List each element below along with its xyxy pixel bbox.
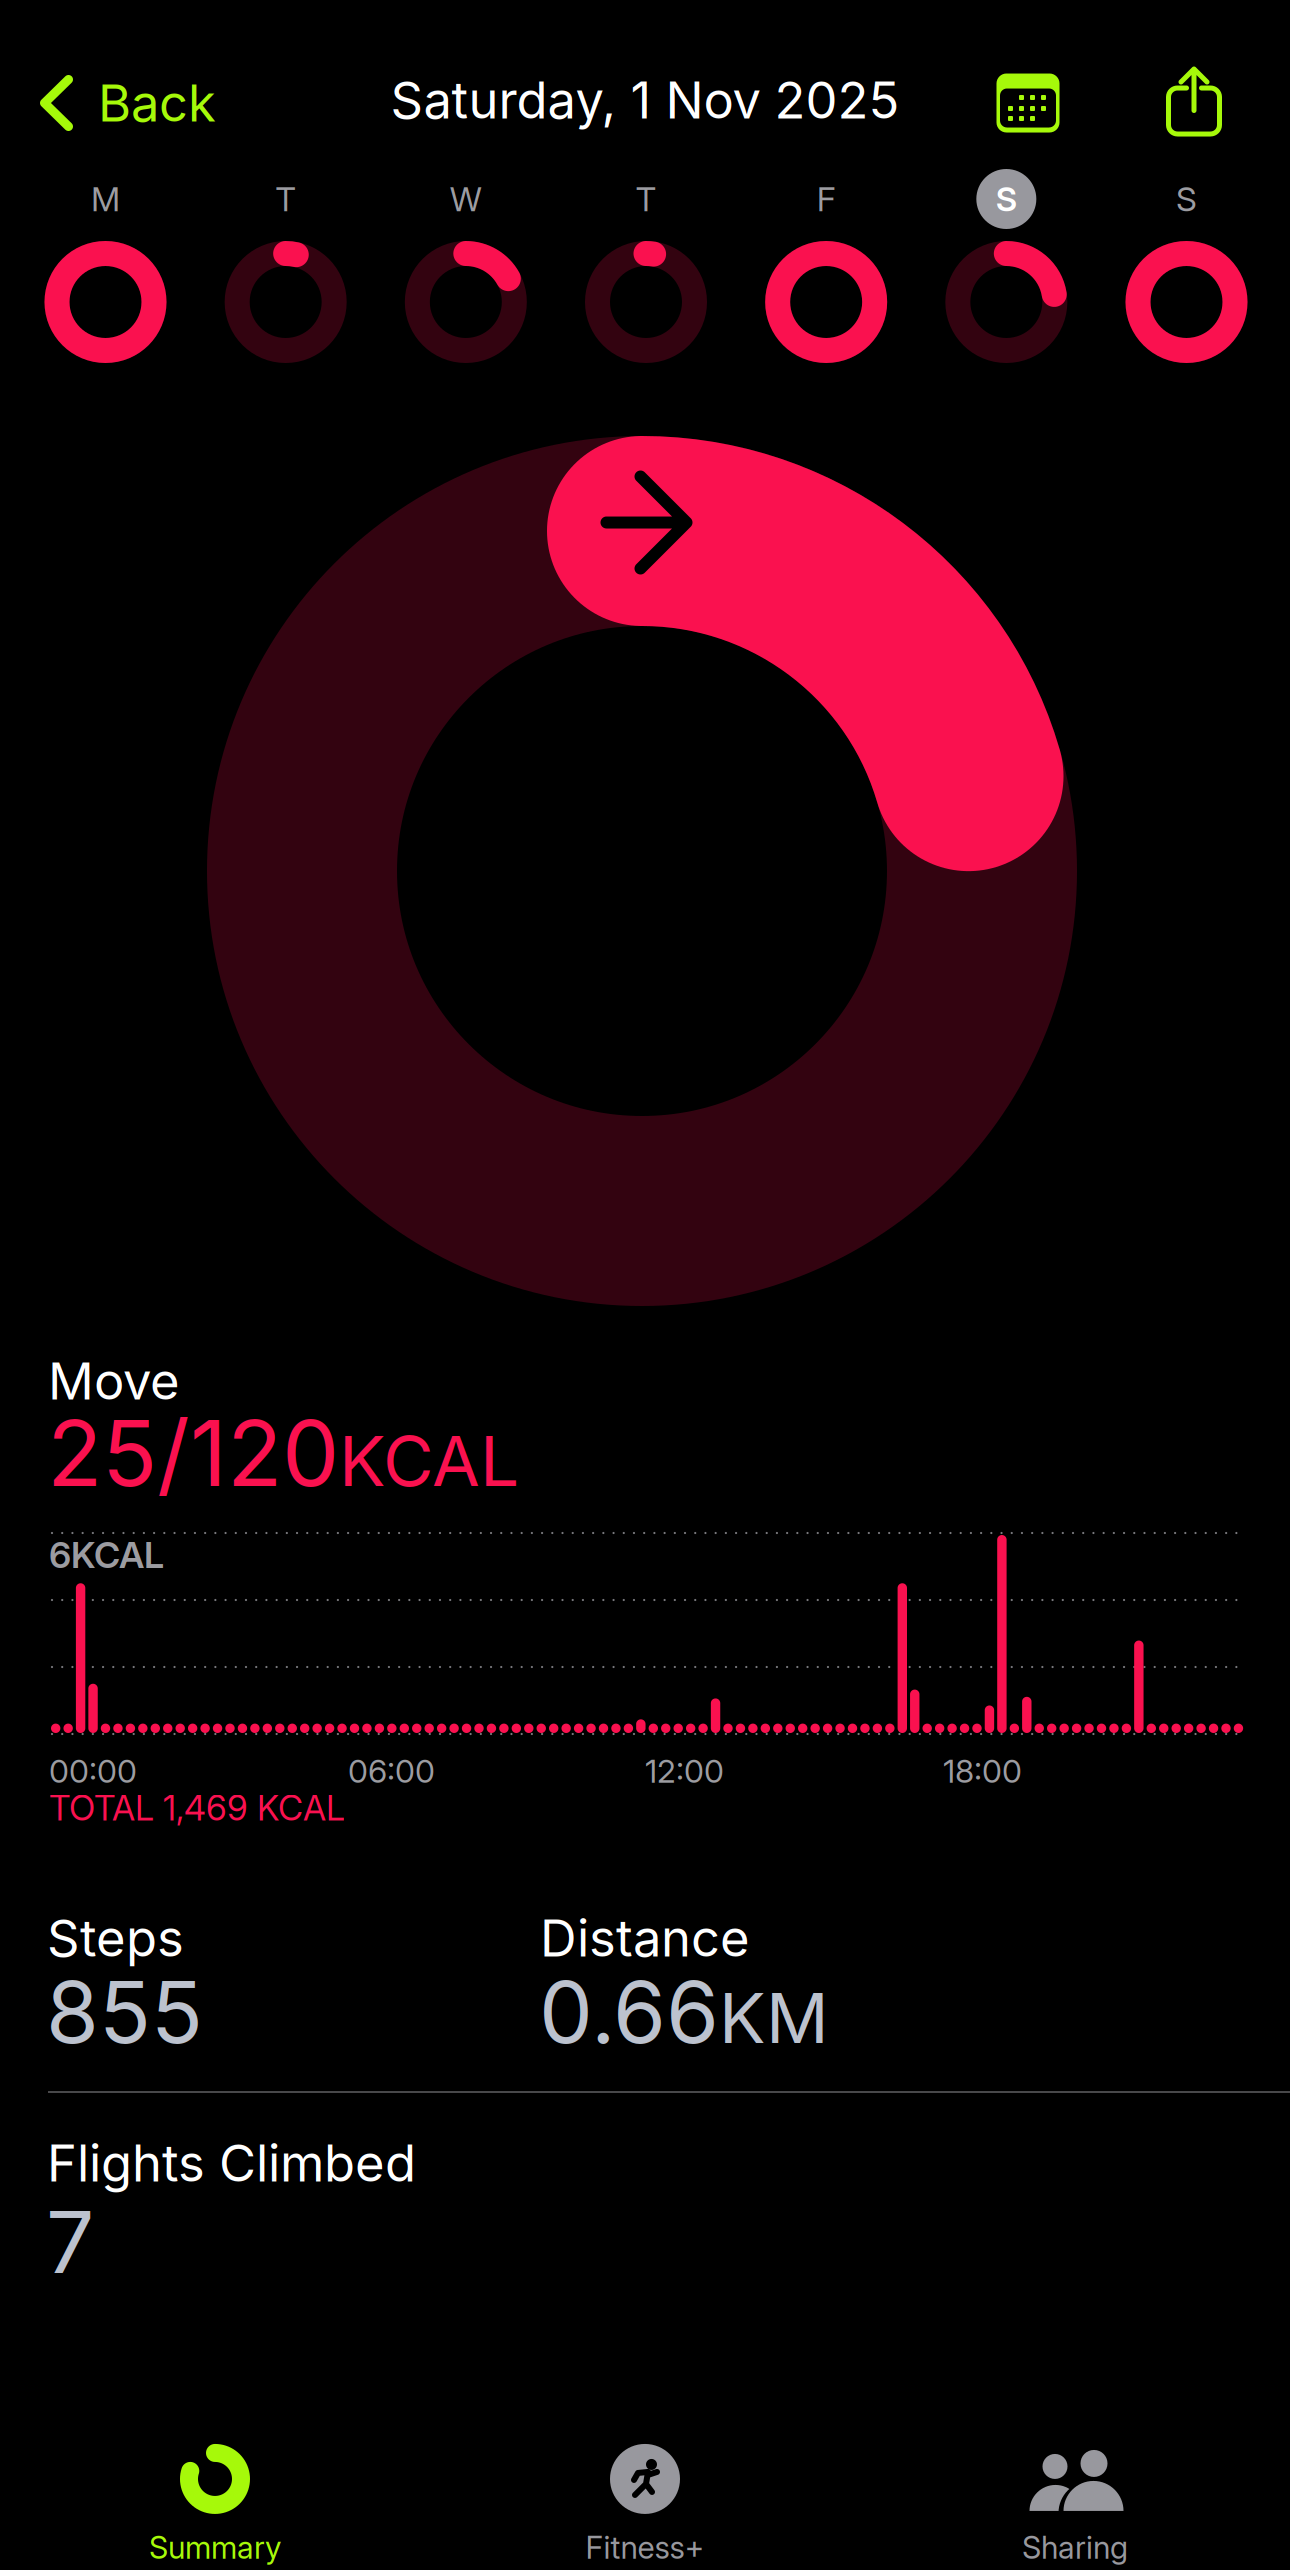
staticText: Saturday, 1 Nov 2025 [390,69,899,131]
staticText: W [450,179,482,219]
staticText: 06:00 [348,1752,435,1790]
staticText: Summary [149,2529,281,2566]
staticText: F [817,179,836,219]
staticText: 12:00 [645,1752,724,1790]
staticText: Steps [47,1907,184,1969]
staticText: Back [98,72,216,134]
button[interactable]: Calendar [978,55,1078,151]
staticText: 7 [46,2190,94,2294]
button[interactable]: Share [1144,53,1244,149]
staticText: 855 [46,1960,203,2064]
staticText: 18:00 [943,1752,1022,1790]
staticText: T [275,179,296,219]
staticText: Fitness+ [585,2529,704,2566]
staticText: 6KCAL [49,1533,164,1577]
staticText: 0.66 [539,1960,719,2064]
staticText: Sharing [1022,2529,1128,2566]
button[interactable]: Fitness+ [430,2439,860,2570]
staticText: Distance [540,1907,750,1969]
staticText: KM [719,1976,829,2060]
staticText: M [91,179,120,219]
staticText: T [635,179,656,219]
staticText: Flights Climbed [47,2132,416,2194]
staticText: 25/120 [47,1398,339,1508]
staticText: 00:00 [49,1752,137,1790]
staticText: KCAL [339,1419,519,1503]
staticText: S [1176,179,1197,219]
button[interactable]: Summary [0,2439,430,2570]
staticText: TOTAL 1,469 KCAL [49,1787,345,1829]
staticText: S [996,179,1017,219]
button[interactable]: Sharing [860,2439,1290,2570]
button[interactable]: Back [32,55,230,151]
staticText: Move [48,1350,180,1412]
